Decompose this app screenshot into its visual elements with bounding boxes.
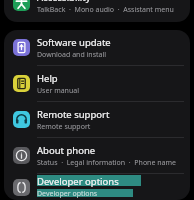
staticText: TalkBack · Mono audio · Assistant menu <box>37 5 174 13</box>
button[interactable]: Remote support <box>4 102 190 137</box>
staticText: Accessibility <box>37 0 91 4</box>
staticText: Status · Legal information · Phone name <box>37 158 176 168</box>
staticText: Remote support <box>37 108 110 121</box>
button[interactable]: Help <box>4 66 190 101</box>
staticText: Software update <box>37 36 111 49</box>
staticText: Download and install <box>37 50 107 60</box>
button[interactable]: Software update <box>4 30 190 65</box>
staticText: User manual <box>37 86 79 96</box>
button[interactable]: About phone <box>4 138 190 173</box>
staticText: Help <box>37 72 58 85</box>
staticText: Developer options <box>37 189 98 199</box>
staticText: About phone <box>37 144 96 157</box>
staticText: Remote support <box>37 122 91 132</box>
button[interactable]: Accessibility <box>4 0 190 13</box>
staticText: Developer options <box>37 175 119 188</box>
button[interactable]: Developer options <box>4 174 190 200</box>
